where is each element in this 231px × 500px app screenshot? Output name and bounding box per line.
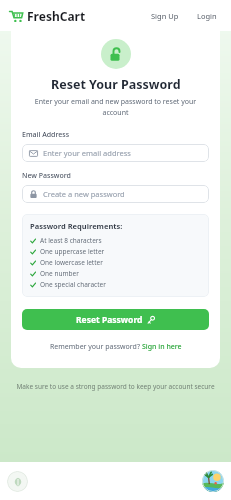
button[interactable]: Reset Password [22, 309, 209, 330]
button[interactable]: Create a new password [22, 185, 209, 203]
staticText: One number [40, 269, 79, 278]
staticText: Reset Your Password [51, 76, 181, 93]
staticText: Make sure to use a strong password to ke… [16, 382, 215, 391]
staticText: Sign Up [151, 11, 179, 21]
button[interactable]: FreshCart [9, 8, 86, 24]
staticText: Enter your email address [43, 148, 131, 158]
staticText: Remember your password? [50, 342, 142, 352]
staticText: One uppercase letter [40, 247, 105, 256]
button[interactable]: Profile [202, 470, 224, 492]
staticText: Password Requirements: [30, 221, 123, 231]
button[interactable]: Assistant [7, 471, 28, 492]
button[interactable]: Enter your email address [22, 144, 209, 162]
staticText: One lowercase letter [40, 258, 103, 267]
staticText: One special character [40, 280, 106, 289]
staticText: Reset Password [76, 314, 143, 326]
staticText: At least 8 characters [40, 236, 102, 245]
staticText: Enter your email and new password to res… [28, 97, 203, 117]
staticText: Email Address [22, 130, 209, 140]
staticText: Login [197, 11, 217, 21]
staticText: FreshCart [27, 8, 86, 24]
button[interactable]: Remember your password? [48, 340, 184, 354]
button[interactable]: Sign Up [146, 7, 184, 25]
button[interactable]: Login [192, 7, 222, 25]
staticText: Sign in here [142, 342, 182, 352]
staticText: Create a new password [43, 189, 125, 199]
staticText: New Password [22, 171, 209, 181]
